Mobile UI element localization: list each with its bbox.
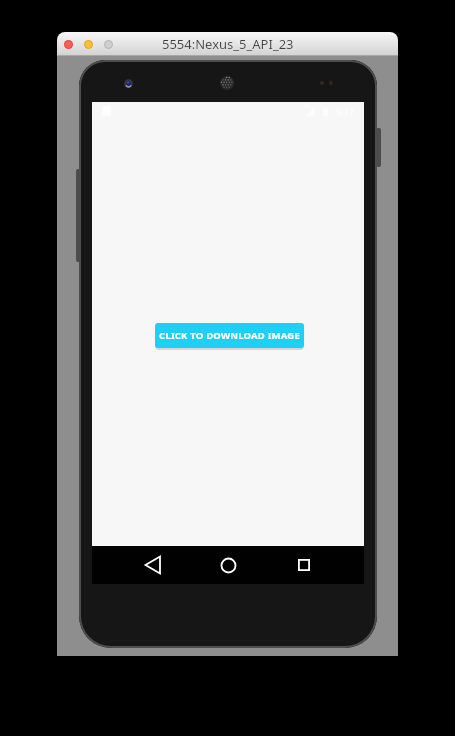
staticText: CLICK TO DOWNLOAD IMAGE [159, 329, 300, 342]
button[interactable]: CLICK TO DOWNLOAD IMAGE [155, 323, 304, 348]
button[interactable] [84, 40, 93, 49]
staticText: 5554:Nexus_5_API_23 [162, 35, 294, 53]
button[interactable] [64, 40, 73, 49]
button[interactable] [104, 40, 113, 49]
button[interactable] [274, 546, 334, 584]
button[interactable] [122, 546, 182, 584]
button[interactable] [198, 546, 258, 584]
